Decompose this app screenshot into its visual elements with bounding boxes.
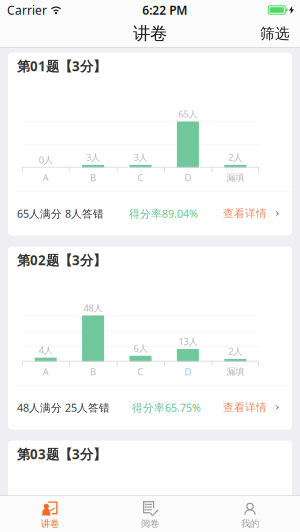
staticText: 48人满分 25人答错 bbox=[17, 400, 110, 415]
staticText: 13人 bbox=[178, 335, 197, 347]
staticText: C bbox=[137, 171, 143, 184]
staticText: D bbox=[184, 365, 191, 378]
staticText: 2人 bbox=[228, 345, 242, 357]
staticText: 48人 bbox=[84, 302, 103, 314]
button[interactable]: 阅卷 bbox=[100, 496, 200, 532]
staticText: 得分率89.04% bbox=[129, 206, 198, 221]
button[interactable]: 筛选 bbox=[251, 20, 299, 47]
staticText: 第01题【3分】 bbox=[17, 57, 106, 75]
staticText: 0人 bbox=[39, 154, 53, 166]
button[interactable]: 65人满分 8人答错 bbox=[8, 191, 292, 235]
staticText: 54人 bbox=[131, 496, 150, 508]
staticText: A bbox=[43, 171, 49, 184]
staticText: C bbox=[137, 365, 143, 378]
staticText: 漏填 bbox=[226, 172, 244, 183]
staticText: 6人 bbox=[133, 342, 147, 354]
staticText: B bbox=[90, 171, 96, 184]
staticText: 阅卷 bbox=[141, 518, 159, 529]
staticText: 第03题【3分】 bbox=[17, 445, 106, 463]
button[interactable]: 48人满分 25人答错 bbox=[8, 385, 292, 429]
staticText: 3人 bbox=[86, 151, 100, 163]
staticText: 4人 bbox=[39, 344, 53, 356]
staticText: 查看详情 bbox=[223, 401, 267, 414]
staticText: 第02题【3分】 bbox=[17, 251, 106, 269]
staticText: B bbox=[90, 365, 96, 378]
staticText: 65人满分 8人答错 bbox=[17, 206, 104, 221]
staticText: 讲卷 bbox=[133, 23, 167, 44]
staticText: D bbox=[184, 171, 191, 184]
staticText: A bbox=[43, 365, 49, 378]
button[interactable]: 讲卷 bbox=[0, 496, 100, 532]
staticText: 得分率65.75% bbox=[132, 400, 201, 415]
staticText: 3人 bbox=[133, 151, 147, 163]
staticText: Carrier bbox=[7, 2, 47, 18]
staticText: 筛选 bbox=[260, 24, 290, 42]
staticText: 2人 bbox=[228, 151, 242, 163]
staticText: 我的 bbox=[241, 518, 259, 529]
button[interactable]: 我的 bbox=[200, 496, 300, 532]
staticText: 65人 bbox=[178, 108, 197, 120]
staticText: 漏填 bbox=[226, 366, 244, 377]
staticText: 6:22 PM bbox=[142, 2, 187, 18]
staticText: 查看详情 bbox=[223, 207, 267, 220]
staticText: 讲卷 bbox=[41, 518, 59, 529]
